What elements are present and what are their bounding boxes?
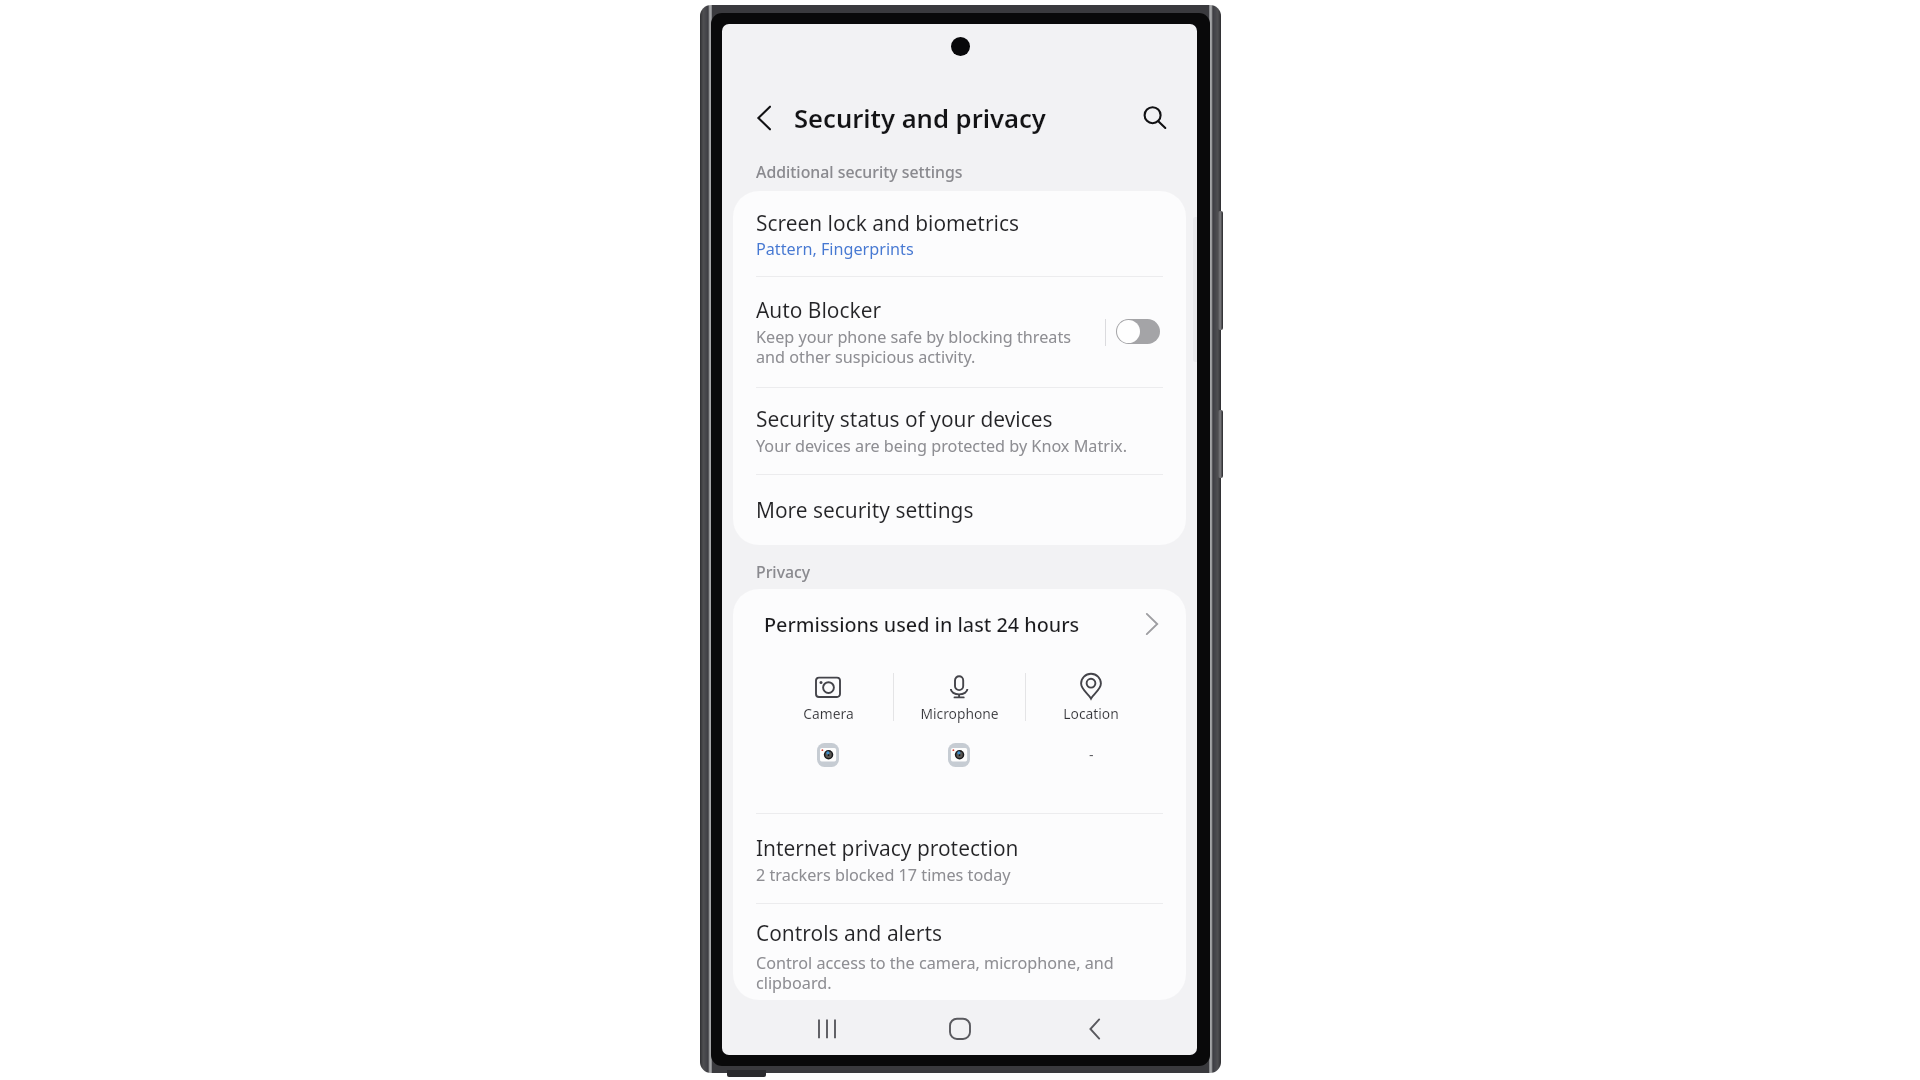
staticText: Security status of your devices xyxy=(756,405,1053,433)
button[interactable] xyxy=(733,589,1186,657)
button[interactable] xyxy=(733,277,1186,387)
staticText: Permissions used in last 24 hours xyxy=(764,611,1080,638)
button[interactable]: Search xyxy=(1136,97,1178,139)
staticText: Additional security settings xyxy=(756,161,963,183)
staticText: Keep your phone safe by blocking threats… xyxy=(756,326,1074,368)
button[interactable] xyxy=(733,475,1186,545)
staticText: - xyxy=(1089,745,1094,764)
staticText: Your devices are being protected by Knox… xyxy=(756,435,1127,457)
button[interactable]: Camera permission usage xyxy=(766,660,890,772)
staticText: Camera xyxy=(803,704,854,723)
button[interactable]: Navigate up xyxy=(742,96,786,140)
button[interactable] xyxy=(733,191,1186,276)
staticText: Microphone xyxy=(920,704,999,723)
staticText: Auto Blocker xyxy=(756,296,882,324)
staticText: Control access to the camera, microphone… xyxy=(756,952,1114,994)
staticText: Screen lock and biometrics xyxy=(756,209,1019,237)
staticText: Pattern, Fingerprints xyxy=(756,238,914,260)
button[interactable]: Home xyxy=(934,1003,986,1055)
staticText: 2 trackers blocked 17 times today xyxy=(756,864,1011,886)
button[interactable]: Back xyxy=(1069,1003,1121,1055)
staticText: Location xyxy=(1063,704,1119,723)
button[interactable]: Auto Blocker, off xyxy=(1112,315,1164,348)
button[interactable] xyxy=(733,388,1186,474)
button[interactable]: Location permission usage xyxy=(1029,660,1153,772)
button[interactable] xyxy=(733,814,1186,903)
button[interactable]: Microphone permission usage xyxy=(897,660,1021,772)
button[interactable]: Recent apps xyxy=(801,1003,853,1055)
staticText: More security settings xyxy=(756,496,974,524)
staticText: Internet privacy protection xyxy=(756,834,1019,862)
button[interactable] xyxy=(733,904,1186,1000)
staticText: Privacy xyxy=(756,561,811,583)
staticText: Controls and alerts xyxy=(756,919,942,947)
staticText: Security and privacy xyxy=(794,101,1046,136)
